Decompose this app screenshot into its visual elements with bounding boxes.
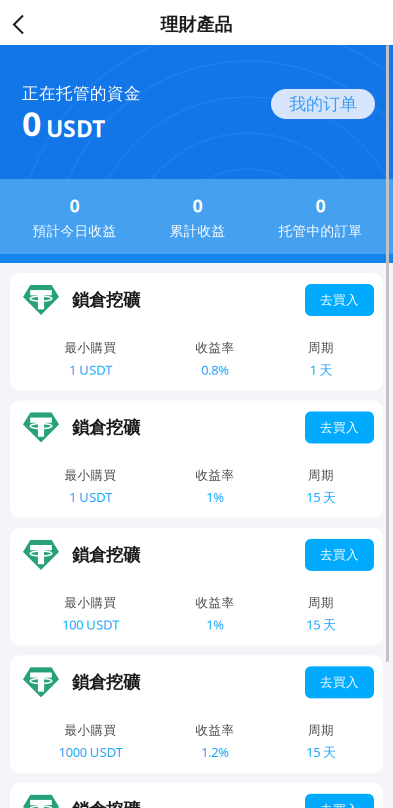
staticText: 1 天	[309, 361, 332, 378]
staticText: 去買入	[320, 802, 359, 808]
staticText: 0	[192, 193, 202, 218]
staticText: 1000 USDT	[58, 743, 122, 761]
staticText: 收益率	[195, 467, 234, 483]
staticText: 15 天	[306, 743, 336, 761]
button[interactable]: 我的订单	[271, 89, 375, 119]
staticText: 我的订单	[289, 93, 357, 115]
staticText: 周期	[308, 340, 334, 356]
staticText: 0	[22, 100, 41, 146]
staticText: 周期	[308, 595, 334, 611]
staticText: USDT	[46, 113, 105, 144]
staticText: 收益率	[195, 722, 234, 738]
staticText: 去買入	[320, 292, 359, 308]
staticText: 去買入	[320, 419, 359, 435]
staticText: 去買入	[320, 674, 359, 690]
staticText: 理財產品	[160, 13, 232, 36]
button[interactable]: Back	[0, 3, 42, 45]
staticText: 周期	[308, 722, 334, 738]
staticText: 累計收益	[169, 223, 225, 240]
button[interactable]: 去買入	[305, 794, 374, 808]
staticText: 0.8%	[201, 361, 229, 378]
staticText: 鎖倉挖礦	[72, 799, 140, 808]
staticText: 鎖倉挖礦	[72, 544, 140, 566]
staticText: 收益率	[195, 595, 234, 611]
staticText: 1%	[206, 488, 224, 506]
staticText: 托管中的訂單	[278, 223, 362, 240]
staticText: 最小購買	[64, 340, 116, 356]
staticText: 1 USDT	[69, 361, 112, 378]
staticText: 1%	[206, 616, 224, 633]
staticText: 0	[69, 193, 79, 218]
staticText: 0	[315, 193, 325, 218]
staticText: 1 USDT	[69, 488, 112, 506]
staticText: 最小購買	[64, 722, 116, 738]
staticText: 100 USDT	[62, 616, 119, 633]
staticText: 最小購買	[64, 467, 116, 483]
staticText: 收益率	[195, 340, 234, 356]
button[interactable]: 去買入	[305, 539, 374, 571]
button[interactable]: 去買入	[305, 284, 374, 316]
staticText: 周期	[308, 467, 334, 483]
button[interactable]: 去買入	[305, 411, 374, 443]
staticText: 正在托管的資金	[22, 83, 141, 104]
staticText: 15 天	[306, 616, 336, 633]
staticText: 鎖倉挖礦	[72, 671, 140, 693]
staticText: 鎖倉挖礦	[72, 417, 140, 438]
staticText: 鎖倉挖礦	[72, 289, 140, 311]
staticText: 1.2%	[201, 743, 229, 761]
staticText: 15 天	[306, 488, 336, 506]
staticText: 預計今日收益	[32, 223, 116, 240]
staticText: 最小購買	[64, 595, 116, 611]
button[interactable]: 去買入	[305, 666, 374, 698]
staticText: 去買入	[320, 547, 359, 563]
